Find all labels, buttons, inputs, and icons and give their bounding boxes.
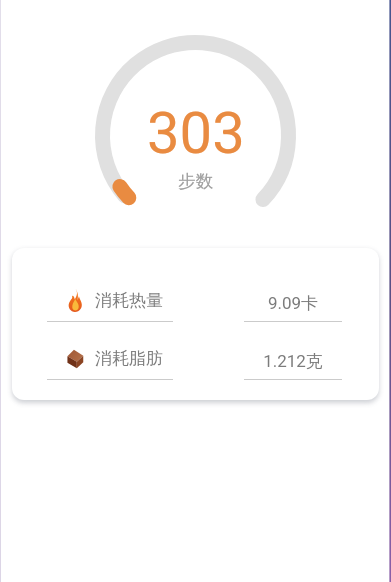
staticText: 9.09卡 <box>244 293 342 314</box>
button[interactable]: 消耗热量 <box>12 280 379 338</box>
staticText: 步数 <box>178 170 213 192</box>
staticText: 303 <box>147 99 245 167</box>
staticText: 消耗脂肪 <box>95 348 163 369</box>
staticText: 消耗热量 <box>95 290 163 311</box>
staticText: 1.212克 <box>244 351 342 372</box>
button[interactable]: 消耗脂肪 <box>12 338 379 396</box>
